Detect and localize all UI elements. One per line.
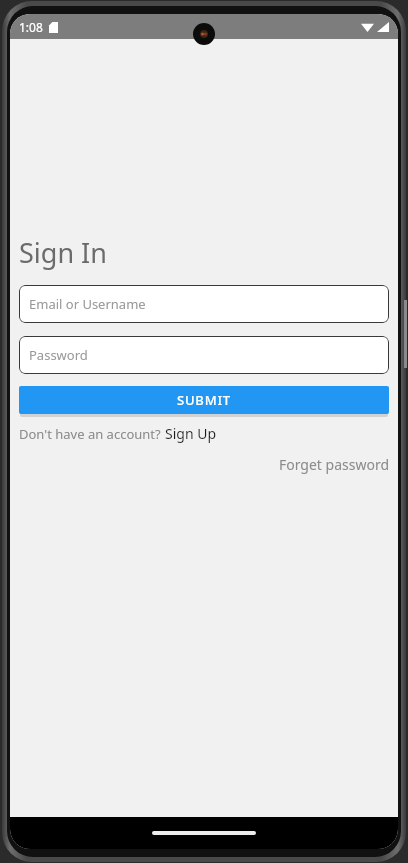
- staticText: Don't have an account?: [19, 425, 165, 443]
- button[interactable]: Email or Username: [19, 285, 389, 323]
- staticText: Sign In: [19, 234, 107, 271]
- staticText: 1:08: [19, 19, 43, 35]
- staticText: Sign Up: [165, 424, 217, 443]
- button[interactable]: Home gesture bar: [152, 831, 256, 835]
- staticText: Email or Username: [29, 295, 146, 313]
- staticText: SUBMIT: [177, 391, 231, 409]
- staticText: Forget password: [278, 455, 389, 474]
- button[interactable]: SUBMIT: [19, 386, 389, 414]
- button[interactable]: Forget password: [278, 455, 389, 474]
- button[interactable]: Password: [19, 336, 389, 374]
- staticText: Password: [29, 346, 88, 364]
- button[interactable]: Sign Up: [165, 424, 217, 443]
